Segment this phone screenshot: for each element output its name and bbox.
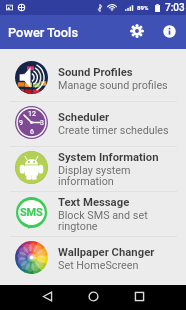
button[interactable]: Info <box>156 18 182 44</box>
button[interactable]: Back <box>36 285 59 307</box>
staticText: Sound Profiles <box>58 66 133 79</box>
button[interactable]: System Information <box>0 147 186 191</box>
button[interactable]: Recents <box>128 285 151 307</box>
staticText: 3 <box>40 119 44 127</box>
button[interactable]: Wallpaper Changer <box>0 237 186 281</box>
staticText: Text Message <box>58 196 130 209</box>
staticText: 9 <box>19 119 23 127</box>
staticText: 7:03 <box>165 2 185 14</box>
staticText: SMS <box>20 206 43 219</box>
staticText: Block SMS and set ringtone <box>58 209 148 233</box>
button[interactable]: Sound Profiles <box>0 57 186 101</box>
staticText: Scheduler <box>58 111 110 124</box>
staticText: Set HomeScreen <box>58 259 139 272</box>
staticText: 89% <box>137 4 149 11</box>
button[interactable]: Home <box>82 285 105 307</box>
staticText: Display system information <box>58 164 131 188</box>
staticText: 6 <box>30 128 34 136</box>
button[interactable]: SMS <box>0 192 186 236</box>
button[interactable]: Settings <box>124 18 150 44</box>
staticText: Power Tools <box>8 25 79 40</box>
staticText: Manage sound profiles <box>58 79 168 92</box>
button[interactable]: 12 <box>0 102 186 146</box>
staticText: System Information <box>58 151 159 164</box>
staticText: Wallpaper Changer <box>58 246 155 259</box>
staticText: Create timer schedules <box>58 124 169 137</box>
staticText: 12 <box>28 110 36 118</box>
